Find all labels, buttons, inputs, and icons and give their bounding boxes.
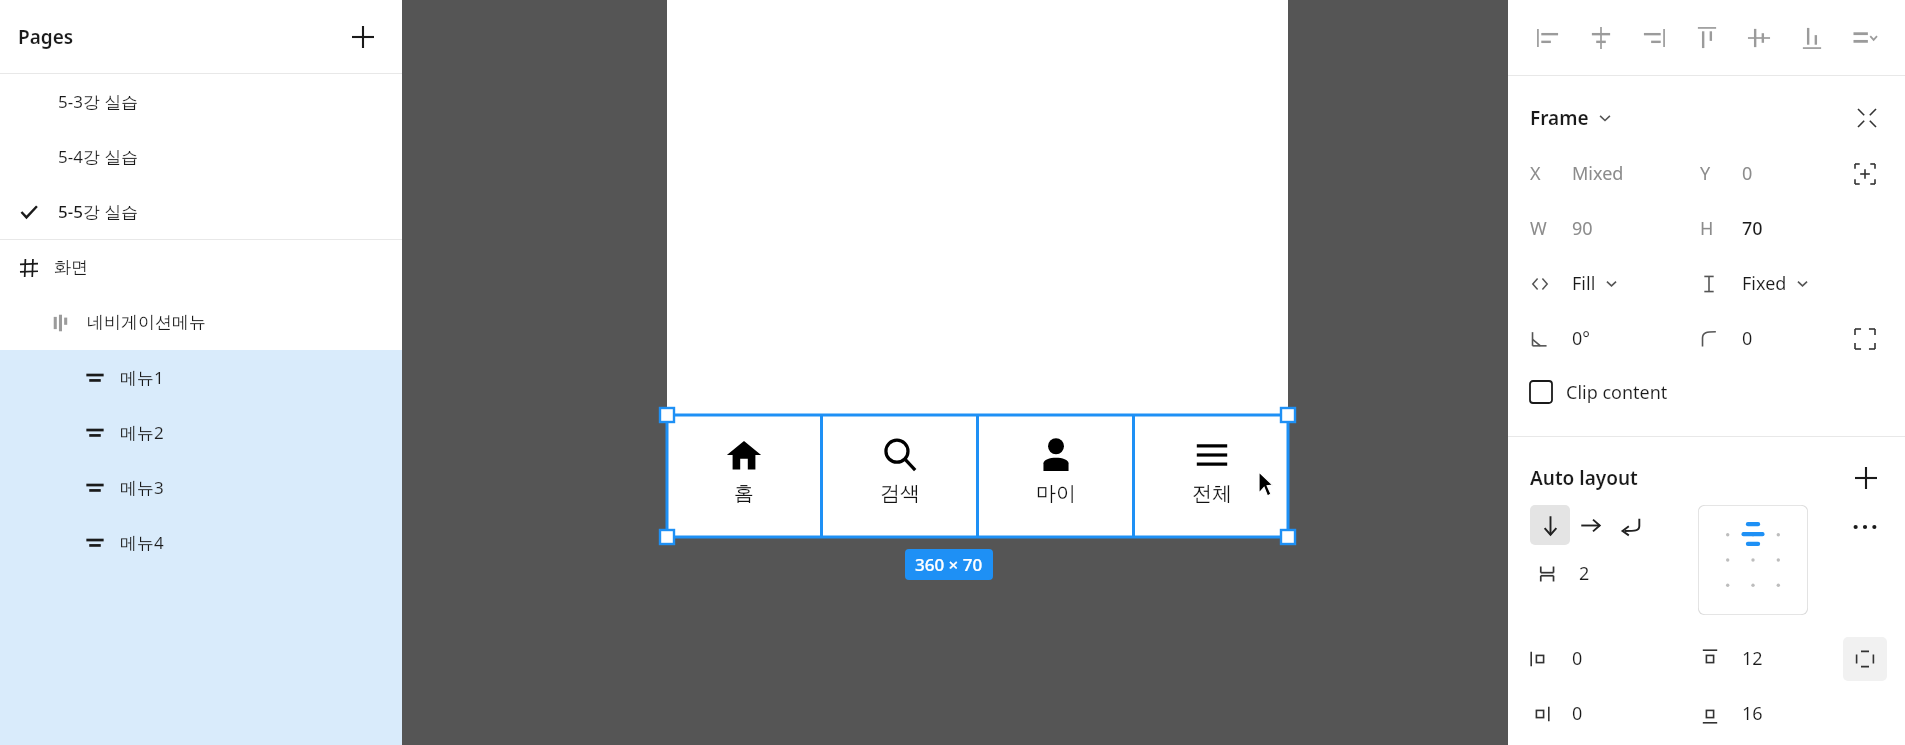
button[interactable]: Independent padding: [1843, 637, 1887, 681]
staticText: 0: [1742, 326, 1753, 351]
button[interactable]: Distribute: [1844, 17, 1886, 59]
staticText: 화면: [54, 257, 88, 278]
button[interactable]: Horizontal layout: [1570, 505, 1610, 545]
button[interactable]: Independent corners: [1847, 321, 1883, 357]
staticText: 메뉴2: [120, 421, 164, 444]
staticText: Auto layout: [1530, 465, 1638, 491]
staticText: 0: [1742, 161, 1753, 186]
button[interactable]: 5-5강 실습: [0, 184, 402, 239]
button[interactable]: Align vertical center: [1738, 17, 1780, 59]
button[interactable]: Add auto layout: [1849, 461, 1883, 495]
staticText: Clip content: [1566, 380, 1668, 405]
button[interactable]: Align top: [1686, 17, 1728, 59]
button[interactable]: 화면: [0, 240, 402, 295]
staticText: 마이: [1036, 481, 1076, 506]
button[interactable]: Fixed: [1742, 271, 1847, 296]
button[interactable]: Pages: [0, 0, 402, 73]
staticText: 메뉴1: [120, 366, 164, 389]
button[interactable]: Wrap: [1610, 505, 1650, 545]
staticText: Pages: [18, 24, 74, 50]
button[interactable]: Add page: [346, 20, 380, 54]
staticText: Frame: [1530, 105, 1589, 131]
staticText: 16: [1742, 701, 1763, 726]
staticText: 메뉴4: [120, 531, 164, 554]
staticText: X: [1530, 161, 1541, 186]
staticText: 90: [1572, 216, 1593, 241]
staticText: 네비게이션메뉴: [87, 312, 206, 333]
staticText: 검색: [880, 481, 920, 506]
button[interactable]: Align horizontal center: [1580, 17, 1622, 59]
button[interactable]: Alignment: [1698, 505, 1808, 615]
button[interactable]: 전체: [1135, 415, 1288, 537]
button[interactable]: More options: [1843, 505, 1887, 549]
staticText: W: [1530, 216, 1547, 241]
staticText: 5-4강 실습: [58, 145, 139, 168]
button[interactable]: 5-4강 실습: [0, 129, 402, 184]
staticText: 12: [1742, 646, 1763, 671]
staticText: Mixed: [1572, 161, 1624, 186]
staticText: Y: [1700, 161, 1711, 186]
staticText: Fill: [1572, 271, 1596, 296]
staticText: 5-5강 실습: [58, 200, 139, 223]
staticText: Fixed: [1742, 271, 1787, 296]
button[interactable]: 메뉴4: [0, 515, 402, 570]
button[interactable]: Fill: [1572, 271, 1700, 296]
button[interactable]: Vertical layout: [1530, 505, 1570, 545]
button[interactable]: 검색: [823, 415, 976, 537]
staticText: 전체: [1192, 481, 1232, 506]
button[interactable]: Align right: [1633, 17, 1675, 59]
button[interactable]: Collapse: [1851, 102, 1883, 134]
button[interactable]: 마이: [979, 415, 1132, 537]
staticText: 0: [1572, 701, 1583, 726]
staticText: 메뉴3: [120, 476, 164, 499]
staticText: 홈: [734, 481, 754, 506]
staticText: 0: [1572, 646, 1583, 671]
staticText: 0°: [1572, 326, 1590, 351]
button[interactable]: Align bottom: [1791, 17, 1833, 59]
button[interactable]: 네비게이션메뉴: [0, 295, 402, 350]
staticText: H: [1700, 216, 1714, 241]
button[interactable]: 5-3강 실습: [0, 74, 402, 129]
button[interactable]: 메뉴1: [0, 350, 402, 405]
staticText: 5-3강 실습: [58, 90, 139, 113]
button[interactable]: 홈: [667, 415, 820, 537]
staticText: 70: [1742, 216, 1763, 241]
button[interactable]: 메뉴3: [0, 460, 402, 515]
button[interactable]: Clip content: [1530, 366, 1883, 418]
button[interactable]: Align left: [1527, 17, 1569, 59]
button[interactable]: Frame: [1530, 105, 1612, 131]
button[interactable]: 메뉴2: [0, 405, 402, 460]
staticText: 2: [1579, 561, 1590, 586]
staticText: 360 × 70: [915, 553, 983, 576]
